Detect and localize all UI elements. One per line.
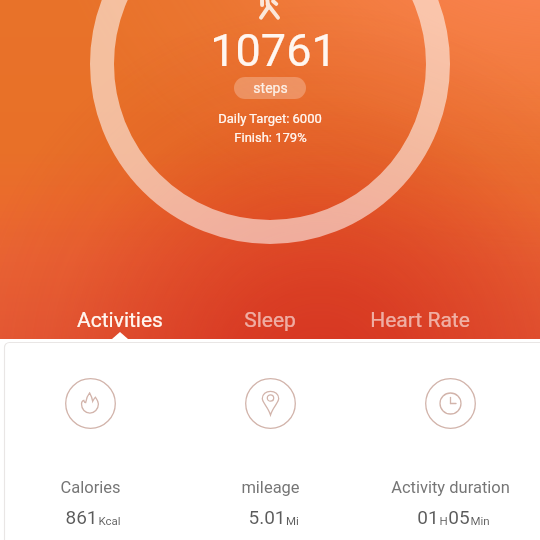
button[interactable]: Calories	[0, 339, 180, 540]
staticText: 5.01	[248, 506, 286, 528]
button[interactable]: Sleep	[195, 291, 345, 339]
button[interactable]: steps	[234, 77, 306, 99]
button[interactable]: Activities	[45, 291, 195, 339]
other: Steps	[256, 0, 282, 22]
staticText: steps	[253, 80, 288, 96]
staticText: Finish: 179%	[234, 130, 307, 145]
staticText: Mi	[286, 514, 299, 527]
staticText: mileage	[241, 478, 300, 497]
button[interactable]: mileage	[180, 339, 360, 540]
staticText: H	[439, 514, 448, 527]
staticText: Heart Rate	[370, 308, 470, 333]
staticText: Activities	[77, 308, 163, 333]
button[interactable]: Activity duration	[360, 339, 540, 540]
button[interactable]: Heart Rate	[345, 291, 495, 339]
staticText: Sleep	[244, 308, 296, 333]
staticText: 10761	[210, 24, 337, 77]
staticText: Activity duration	[391, 478, 510, 497]
staticText: Daily Target: 6000	[218, 111, 322, 126]
staticText: Calories	[60, 478, 121, 497]
staticText: 05	[448, 506, 470, 528]
staticText: Kcal	[98, 514, 121, 527]
staticText: 01	[417, 506, 439, 528]
staticText: Min	[470, 514, 490, 527]
staticText: 861	[65, 506, 98, 528]
